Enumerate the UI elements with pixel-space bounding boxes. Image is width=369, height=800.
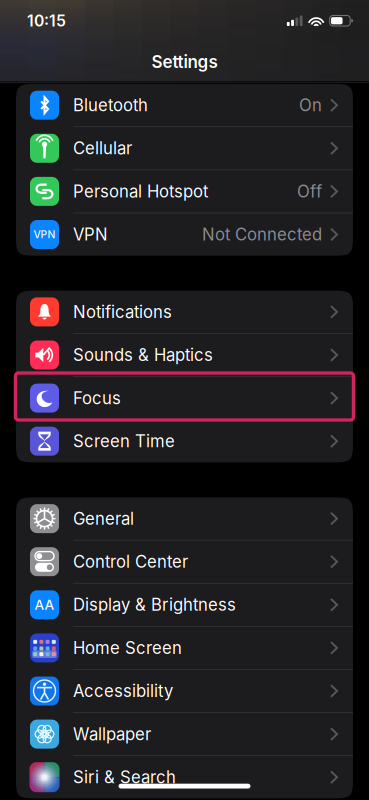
- button[interactable]: VPN: [16, 213, 353, 256]
- staticText: Settings: [151, 51, 217, 72]
- staticText: Control Center: [73, 552, 188, 572]
- button[interactable]: Focus: [16, 377, 353, 419]
- staticText: Cellular: [73, 138, 132, 158]
- button[interactable]: Screen Time: [16, 420, 353, 462]
- staticText: Notifications: [73, 302, 172, 322]
- button[interactable]: Wallpaper: [16, 713, 353, 755]
- staticText: Off: [297, 181, 322, 201]
- button[interactable]: Control Center: [16, 540, 353, 583]
- staticText: VPN: [33, 228, 55, 241]
- button[interactable]: Sounds & Haptics: [16, 334, 353, 376]
- button[interactable]: General: [16, 497, 353, 540]
- button[interactable]: AA: [16, 584, 353, 626]
- staticText: Bluetooth: [73, 95, 148, 115]
- staticText: Screen Time: [73, 431, 175, 451]
- staticText: AA: [34, 597, 54, 613]
- staticText: VPN: [73, 224, 108, 245]
- staticText: 10:15: [27, 11, 66, 30]
- staticText: Display & Brightness: [73, 595, 236, 615]
- button[interactable]: Accessibility: [16, 670, 353, 712]
- staticText: Not Connected: [202, 224, 322, 245]
- button[interactable]: Home Screen: [16, 627, 353, 669]
- staticText: Wallpaper: [73, 724, 151, 744]
- button[interactable]: Cellular: [16, 127, 353, 169]
- button[interactable]: Personal Hotspot: [16, 170, 353, 213]
- staticText: Sounds & Haptics: [73, 345, 213, 365]
- button[interactable]: Siri & Search: [16, 756, 353, 798]
- staticText: Accessibility: [73, 681, 173, 701]
- staticText: Focus: [73, 388, 121, 408]
- staticText: Personal Hotspot: [73, 181, 208, 201]
- staticText: Home Screen: [73, 638, 182, 658]
- staticText: General: [73, 508, 134, 529]
- staticText: On: [299, 95, 322, 115]
- button[interactable]: Notifications: [16, 291, 353, 333]
- button[interactable]: Bluetooth: [16, 84, 353, 126]
- staticText: Siri & Search: [73, 767, 176, 787]
